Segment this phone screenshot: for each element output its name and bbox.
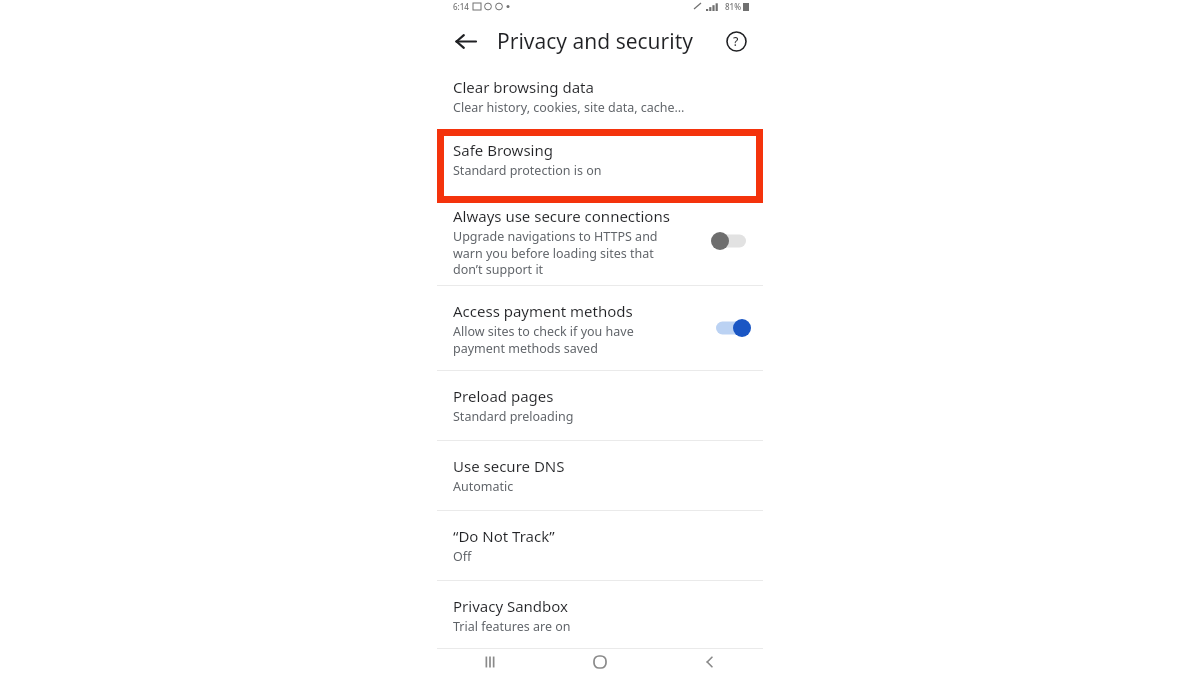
staticText: Access payment methods [453, 301, 633, 321]
button[interactable]: Safe Browsing [437, 122, 763, 196]
button[interactable]: Help [715, 20, 757, 62]
button[interactable]: Privacy Sandbox [437, 581, 763, 650]
button[interactable]: Preload pages [437, 371, 763, 440]
staticText: Trial features are on [453, 618, 571, 635]
staticText: Automatic [453, 478, 514, 495]
staticText: Preload pages [453, 386, 554, 406]
staticText: Privacy Sandbox [453, 596, 569, 616]
button[interactable]: “Do Not Track” [437, 511, 763, 580]
staticText: Standard protection is on [453, 162, 602, 179]
button[interactable]: Use secure DNS [437, 441, 763, 510]
staticText: Clear history, cookies, site data, cache… [453, 99, 685, 116]
staticText: Always use secure connections [453, 206, 670, 226]
button[interactable]: Access payment methods [437, 286, 763, 370]
staticText: Clear browsing data [453, 77, 594, 97]
staticText: Safe Browsing [453, 140, 553, 160]
staticText: Use secure DNS [453, 456, 565, 476]
button[interactable]: Always use secure connections [437, 197, 763, 285]
staticText: Standard preloading [453, 408, 574, 425]
staticText: Allow sites to check if you have payment… [453, 323, 634, 356]
staticText: Off [453, 548, 472, 565]
staticText: ? [733, 33, 739, 49]
staticText: 81% [725, 1, 741, 12]
button[interactable]: Back [443, 19, 487, 63]
staticText: Privacy and security [497, 27, 693, 56]
button[interactable]: Back [693, 648, 727, 675]
button[interactable]: Recent apps [473, 648, 507, 675]
staticText: 6:14 [453, 1, 469, 12]
staticText: Upgrade navigations to HTTPS and warn yo… [453, 228, 658, 277]
button[interactable]: Toggle on [711, 315, 751, 341]
button[interactable]: Clear browsing data [437, 70, 763, 122]
staticText: “Do Not Track” [453, 526, 555, 546]
button[interactable]: Home [583, 648, 617, 675]
button[interactable]: Toggle off [711, 228, 751, 254]
